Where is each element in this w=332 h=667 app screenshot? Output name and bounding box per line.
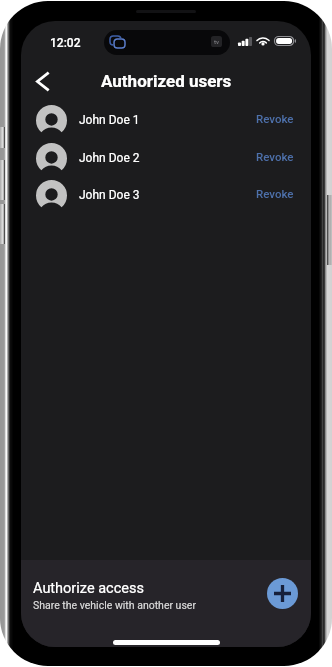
button[interactable]: John Doe 1	[21, 101, 311, 139]
staticText: John Doe 1	[79, 113, 140, 127]
button[interactable]: John Doe 3	[21, 176, 311, 214]
staticText: Revoke	[256, 187, 294, 200]
staticText: tv	[214, 38, 220, 45]
button[interactable]: Add user	[267, 578, 298, 609]
staticText: Revoke	[256, 112, 294, 125]
button[interactable]: Back	[23, 62, 61, 100]
button[interactable]: John Doe 2	[21, 139, 311, 177]
button[interactable]: Revoke	[252, 181, 298, 206]
staticText: Revoke	[256, 150, 294, 163]
staticText: John Doe 3	[79, 188, 140, 202]
button[interactable]: Revoke	[252, 106, 298, 131]
staticText: Authorized users	[101, 71, 232, 91]
staticText: Share the vehicle with another user	[33, 599, 196, 611]
staticText: Authorize access	[33, 580, 144, 597]
staticText: 12:02	[50, 36, 81, 50]
staticText: John Doe 2	[79, 151, 140, 165]
button[interactable]: Revoke	[252, 144, 298, 169]
